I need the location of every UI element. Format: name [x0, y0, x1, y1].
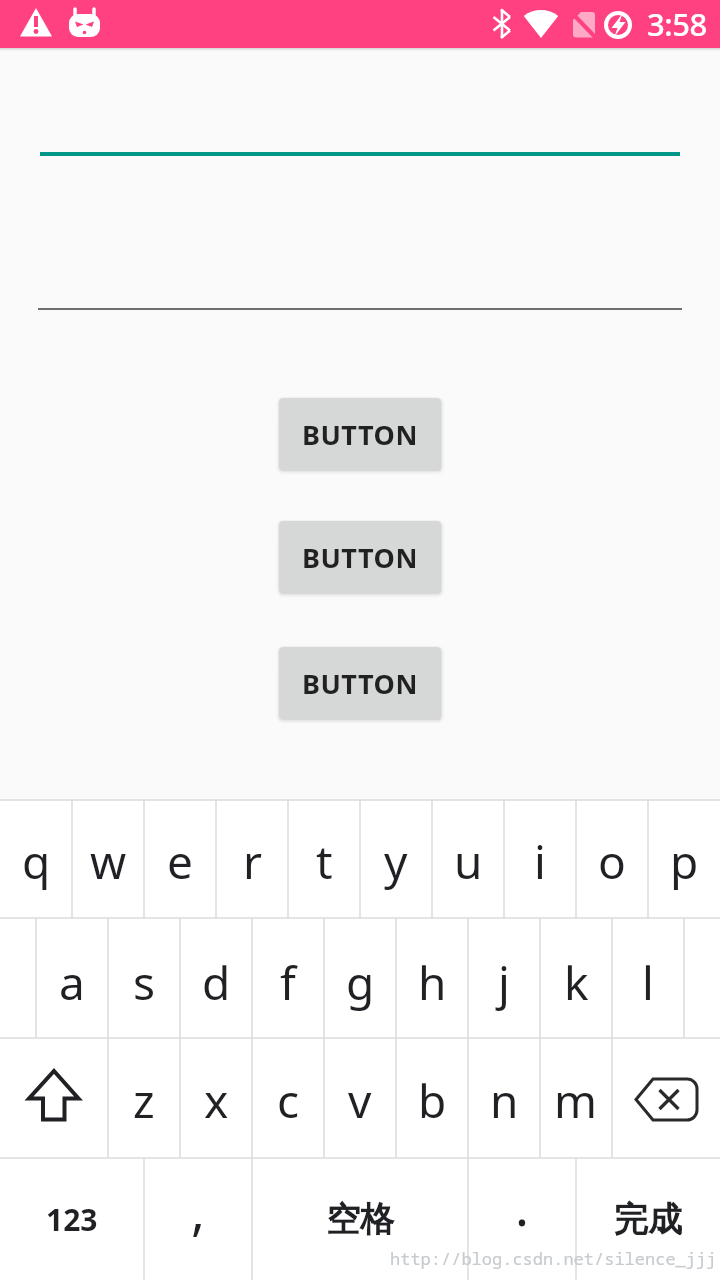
button[interactable]: g — [324, 918, 396, 1038]
button[interactable]: r — [216, 800, 288, 918]
staticText: h — [418, 951, 447, 1014]
staticText: y — [384, 830, 408, 893]
button[interactable]: l — [612, 918, 684, 1038]
button[interactable]: s — [108, 918, 180, 1038]
staticText: t — [316, 830, 333, 893]
staticText: a — [59, 951, 85, 1014]
staticText: s — [133, 951, 156, 1014]
staticText: BUTTON — [302, 665, 418, 702]
button[interactable]: n — [468, 1038, 540, 1158]
button[interactable]: p — [648, 800, 720, 918]
button[interactable]: h — [396, 918, 468, 1038]
staticText: , — [191, 1174, 205, 1245]
staticText: 3:58 — [647, 3, 707, 45]
staticText: j — [498, 951, 510, 1014]
button[interactable]: v — [324, 1038, 396, 1158]
button[interactable]: x — [180, 1038, 252, 1158]
button[interactable]: i — [504, 800, 576, 918]
staticText: 空格 — [326, 1198, 394, 1241]
staticText: i — [534, 830, 546, 893]
button[interactable]: k — [540, 918, 612, 1038]
button[interactable]: u — [432, 800, 504, 918]
button[interactable]: f — [252, 918, 324, 1038]
button[interactable] — [612, 1038, 720, 1158]
staticText: x — [204, 1069, 229, 1132]
button[interactable]: 123 — [0, 1158, 144, 1280]
button[interactable]: t — [288, 800, 360, 918]
staticText: r — [243, 830, 262, 893]
staticText: w — [90, 830, 127, 893]
button[interactable] — [0, 1038, 108, 1158]
button[interactable]: BUTTON — [279, 647, 441, 719]
button[interactable]: a — [36, 918, 108, 1038]
staticText: d — [202, 951, 231, 1014]
staticText: q — [22, 830, 51, 893]
staticText: . — [515, 1170, 529, 1241]
staticText: u — [454, 830, 483, 893]
button[interactable]: m — [540, 1038, 612, 1158]
button[interactable]: BUTTON — [279, 398, 441, 470]
button[interactable]: 完成 — [576, 1158, 720, 1280]
staticText: n — [490, 1069, 519, 1132]
staticText: http://blog.csdn.net/silence_jjj — [390, 1247, 717, 1270]
staticText: l — [642, 951, 654, 1014]
staticText: p — [670, 830, 699, 893]
button[interactable]: BUTTON — [279, 521, 441, 593]
button[interactable]: . — [468, 1158, 576, 1280]
staticText: g — [346, 951, 375, 1014]
staticText: k — [564, 951, 589, 1014]
button[interactable]: o — [576, 800, 648, 918]
button[interactable]: e — [144, 800, 216, 918]
staticText: o — [598, 830, 626, 893]
button[interactable]: b — [396, 1038, 468, 1158]
staticText: BUTTON — [302, 416, 418, 453]
staticText: v — [348, 1069, 372, 1132]
staticText: e — [167, 830, 193, 893]
staticText: b — [418, 1069, 447, 1132]
button[interactable]: 空格 — [252, 1158, 468, 1280]
button[interactable]: , — [144, 1158, 252, 1280]
staticText: m — [554, 1069, 598, 1132]
staticText: 完成 — [614, 1198, 682, 1241]
button[interactable]: w — [72, 800, 144, 918]
staticText: 123 — [46, 1199, 98, 1240]
button[interactable]: j — [468, 918, 540, 1038]
staticText: c — [277, 1069, 300, 1132]
button[interactable]: q — [0, 800, 72, 918]
button[interactable]: z — [108, 1038, 180, 1158]
staticText: BUTTON — [302, 539, 418, 576]
staticText: f — [280, 951, 296, 1014]
button[interactable]: y — [360, 800, 432, 918]
button[interactable]: c — [252, 1038, 324, 1158]
button[interactable]: d — [180, 918, 252, 1038]
staticText: z — [133, 1069, 155, 1132]
